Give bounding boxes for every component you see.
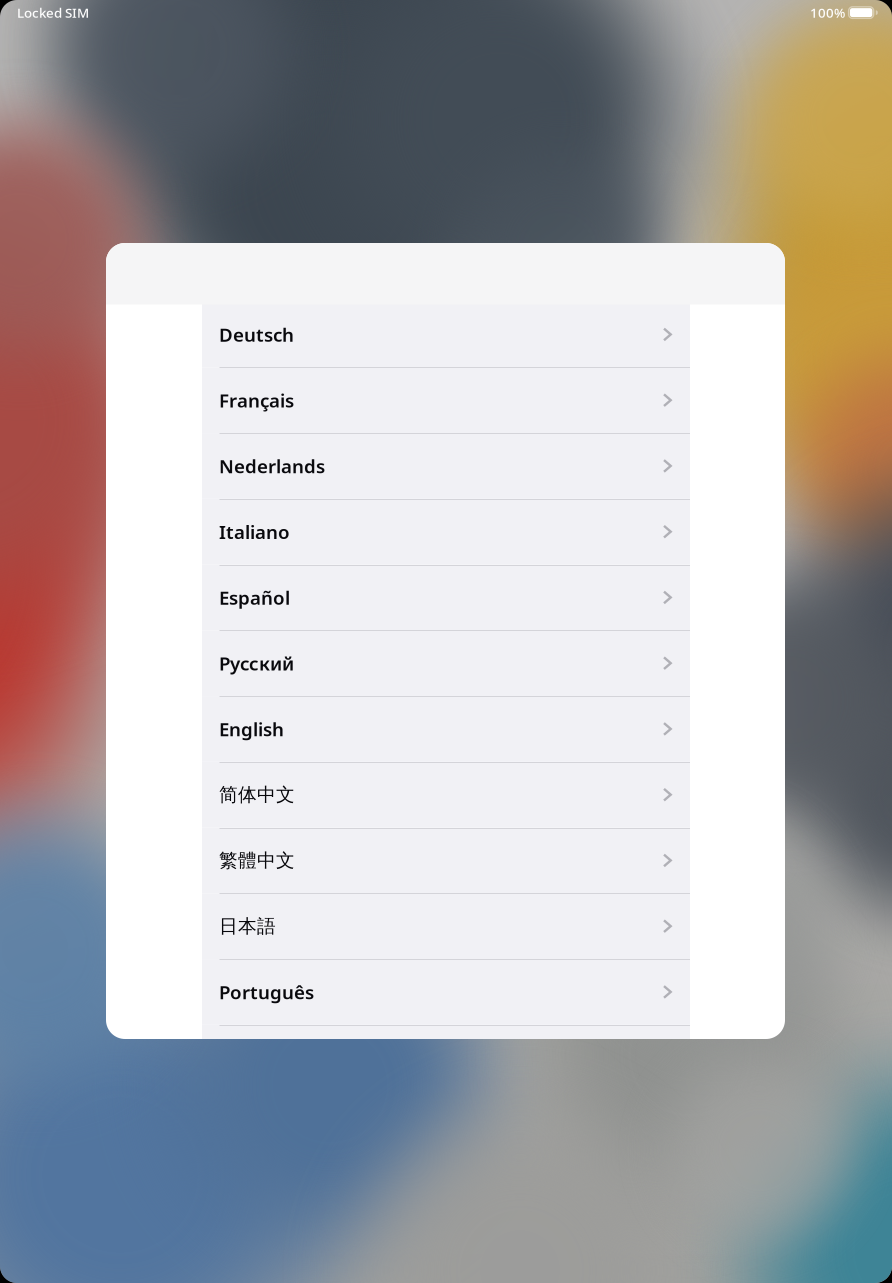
staticText: Deutsch xyxy=(219,322,294,347)
staticText: 日本語 xyxy=(219,915,276,938)
button[interactable]: 简体中文 xyxy=(202,762,690,828)
button[interactable]: Español xyxy=(202,564,690,630)
button[interactable]: Nederlands xyxy=(202,433,690,499)
staticText: English xyxy=(219,716,284,741)
staticText: Nederlands xyxy=(219,453,325,478)
staticText: Português xyxy=(219,979,314,1004)
staticText: Español xyxy=(219,585,290,610)
button[interactable]: 日本語 xyxy=(202,893,690,959)
staticText: Locked SIM xyxy=(17,4,89,21)
button[interactable]: Italiano xyxy=(202,499,690,565)
button[interactable]: Türkçe xyxy=(202,1025,690,1091)
staticText: 100% xyxy=(810,4,845,21)
button[interactable]: 繁體中文 xyxy=(202,827,690,893)
button[interactable]: Português xyxy=(202,959,690,1025)
staticText: Русский xyxy=(219,651,294,676)
staticText: Français xyxy=(219,388,294,413)
button[interactable]: Français xyxy=(202,367,690,433)
button[interactable]: English xyxy=(202,696,690,762)
button[interactable]: Русский xyxy=(202,630,690,696)
staticText: Italiano xyxy=(219,519,290,544)
button[interactable]: Deutsch xyxy=(202,302,690,367)
staticText: 繁體中文 xyxy=(219,849,295,872)
staticText: 简体中文 xyxy=(219,783,295,806)
